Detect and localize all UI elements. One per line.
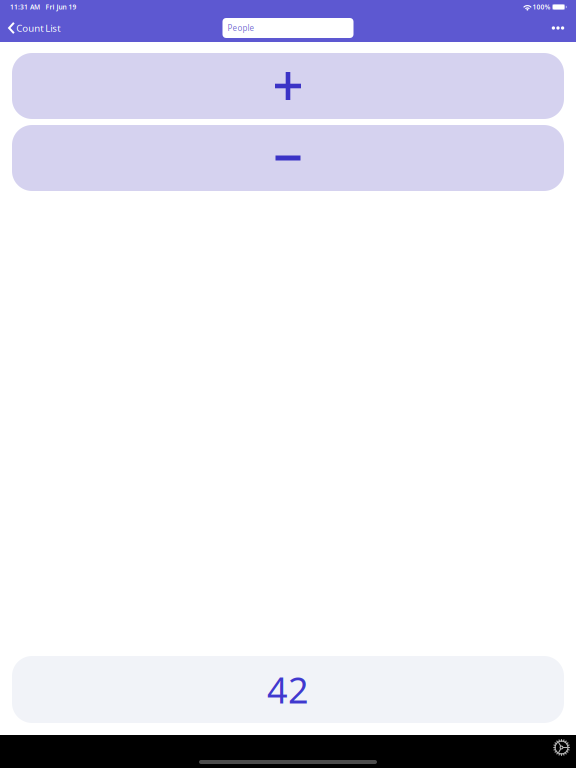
button[interactable]: Increment (12, 53, 564, 119)
staticText: Fri Jun 19 (45, 3, 76, 11)
button[interactable]: People (222, 18, 353, 38)
staticText: 42 (267, 666, 309, 713)
button[interactable]: Decrement (12, 125, 564, 191)
button[interactable]: Count List (0, 14, 90, 42)
staticText: Count List (16, 21, 60, 35)
staticText: 100% (532, 3, 550, 11)
staticText: People (227, 23, 254, 33)
button[interactable]: More options (540, 14, 576, 42)
button[interactable]: Settings (549, 735, 573, 759)
staticText: 11:31 AM (10, 3, 40, 11)
